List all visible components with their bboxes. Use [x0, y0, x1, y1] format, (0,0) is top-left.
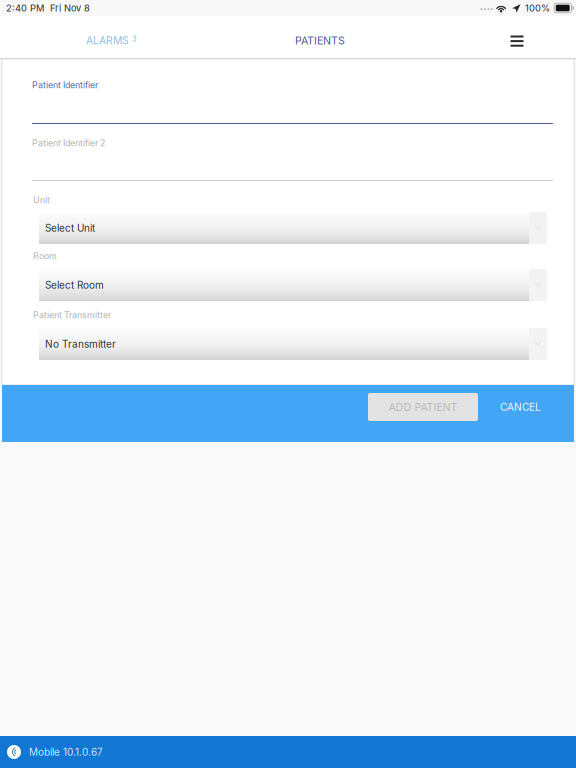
button[interactable]: No Transmitter: [32, 328, 547, 360]
button[interactable]: ADD PATIENT: [368, 393, 478, 421]
staticText: Patient Transmitter: [33, 310, 111, 320]
staticText: Patient Identifier: [32, 80, 98, 90]
staticText: Mobile 10.1.0.67: [29, 746, 103, 758]
staticText: Select Unit: [45, 222, 95, 234]
staticText: CANCEL: [500, 401, 541, 413]
button[interactable]: CANCEL: [489, 393, 552, 421]
staticText: Room: [33, 251, 57, 261]
staticText: 2:40 PM: [6, 2, 44, 14]
staticText: 100%: [525, 2, 550, 14]
staticText: 3: [132, 34, 137, 43]
staticText: Unit: [33, 195, 50, 205]
staticText: Select Room: [45, 279, 104, 291]
staticText: Patient Identifier 2: [32, 138, 105, 148]
button[interactable]: Patient Identifier: [32, 80, 553, 124]
button[interactable]: Select Room: [32, 269, 547, 301]
staticText: No Transmitter: [45, 338, 116, 350]
button[interactable]: Menu: [495, 16, 539, 59]
staticText: Fri Nov 8: [50, 2, 90, 14]
staticText: ALARMS: [86, 34, 129, 47]
button[interactable]: Select Unit: [32, 212, 547, 244]
button[interactable]: Patient Identifier 2: [32, 138, 553, 181]
button[interactable]: ALARMS: [74, 16, 149, 59]
staticText: PATIENTS: [295, 34, 345, 47]
staticText: ADD PATIENT: [388, 400, 457, 413]
